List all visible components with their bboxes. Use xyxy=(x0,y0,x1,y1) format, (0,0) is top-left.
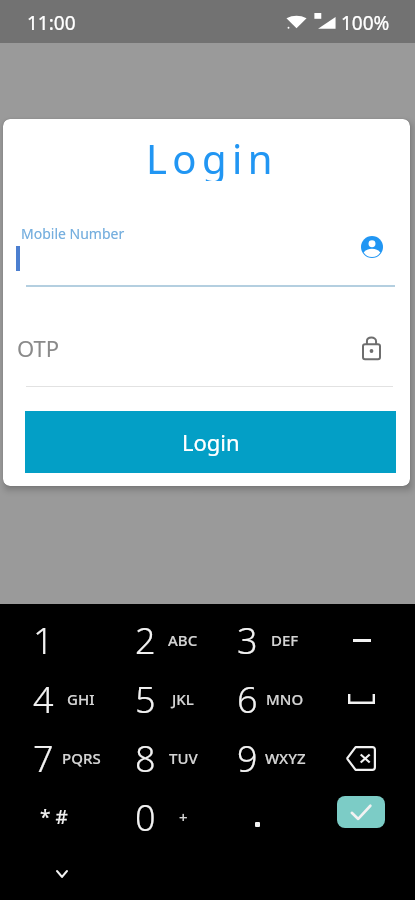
staticText: Login xyxy=(182,427,240,457)
staticText: 3 xyxy=(237,616,258,665)
button[interactable]: Hide keyboard xyxy=(40,852,84,896)
button[interactable]: 4 GHI xyxy=(0,670,103,728)
staticText: GHI xyxy=(67,689,95,709)
staticText: 9 xyxy=(237,734,258,783)
staticText: ABC xyxy=(168,630,198,650)
button[interactable]: Space xyxy=(311,670,414,728)
staticText: 7 xyxy=(33,734,54,783)
button[interactable]: Done xyxy=(337,796,385,828)
button[interactable]: Backspace xyxy=(311,729,414,787)
button[interactable]: 8 TUV xyxy=(103,729,206,787)
staticText: 11:00 xyxy=(27,10,76,36)
staticText: WXYZ xyxy=(265,748,306,768)
staticText: 6 xyxy=(237,675,258,724)
button[interactable]: Star and hash xyxy=(0,788,103,846)
staticText: Mobile Number xyxy=(21,224,125,243)
button[interactable]: 3 DEF xyxy=(207,611,310,669)
staticText: 100% xyxy=(341,10,390,36)
button[interactable]: 2 ABC xyxy=(103,611,206,669)
button[interactable]: Period xyxy=(207,788,310,846)
button[interactable]: 9 WXYZ xyxy=(207,729,310,787)
staticText: 0 xyxy=(135,793,156,842)
staticText: OTP xyxy=(17,333,60,363)
button[interactable]: Done xyxy=(311,788,414,846)
staticText: MNO xyxy=(266,689,304,709)
button[interactable]: Password lock xyxy=(355,331,387,363)
button[interactable]: 6 MNO xyxy=(207,670,310,728)
staticText: PQRS xyxy=(62,748,101,768)
button[interactable]: Login xyxy=(25,411,396,473)
staticText: Login xyxy=(146,131,278,181)
button[interactable]: 5 JKL xyxy=(103,670,206,728)
staticText: 5 xyxy=(135,675,156,724)
button[interactable]: Account xyxy=(357,232,387,262)
staticText: DEF xyxy=(271,630,299,650)
staticText: TUV xyxy=(169,748,198,768)
staticText: 2 xyxy=(135,616,156,665)
staticText: 8 xyxy=(135,734,156,783)
staticText: * # xyxy=(40,804,68,830)
staticText: JKL xyxy=(172,689,194,709)
staticText: + xyxy=(179,807,188,827)
button[interactable]: 1 xyxy=(0,611,103,669)
button[interactable]: 7 PQRS xyxy=(0,729,103,787)
button[interactable]: 0 plus xyxy=(103,788,206,846)
staticText: 4 xyxy=(33,675,54,724)
button[interactable]: Dash xyxy=(311,611,414,669)
staticText: 1 xyxy=(33,616,54,665)
